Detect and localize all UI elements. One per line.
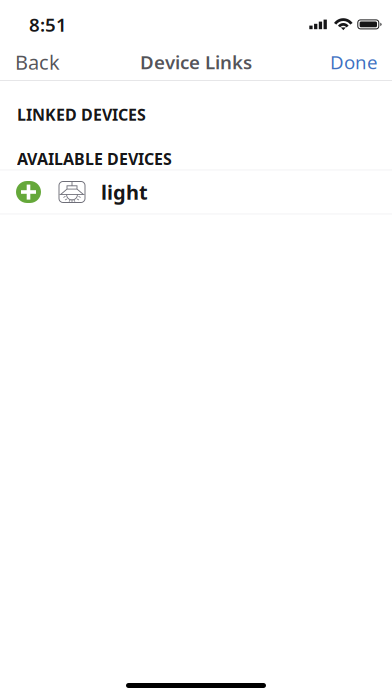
button[interactable]: light (0, 170, 392, 213)
staticText: Done (330, 50, 378, 74)
staticText: Back (15, 49, 60, 75)
button[interactable]: Done (321, 43, 387, 81)
staticText: Device Links (140, 50, 252, 74)
staticText: 8:51 (29, 12, 67, 37)
staticText: LINKED DEVICES (17, 104, 146, 125)
button[interactable]: Back (6, 42, 69, 82)
staticText: light (101, 179, 148, 205)
staticText: AVAILABLE DEVICES (17, 148, 172, 169)
